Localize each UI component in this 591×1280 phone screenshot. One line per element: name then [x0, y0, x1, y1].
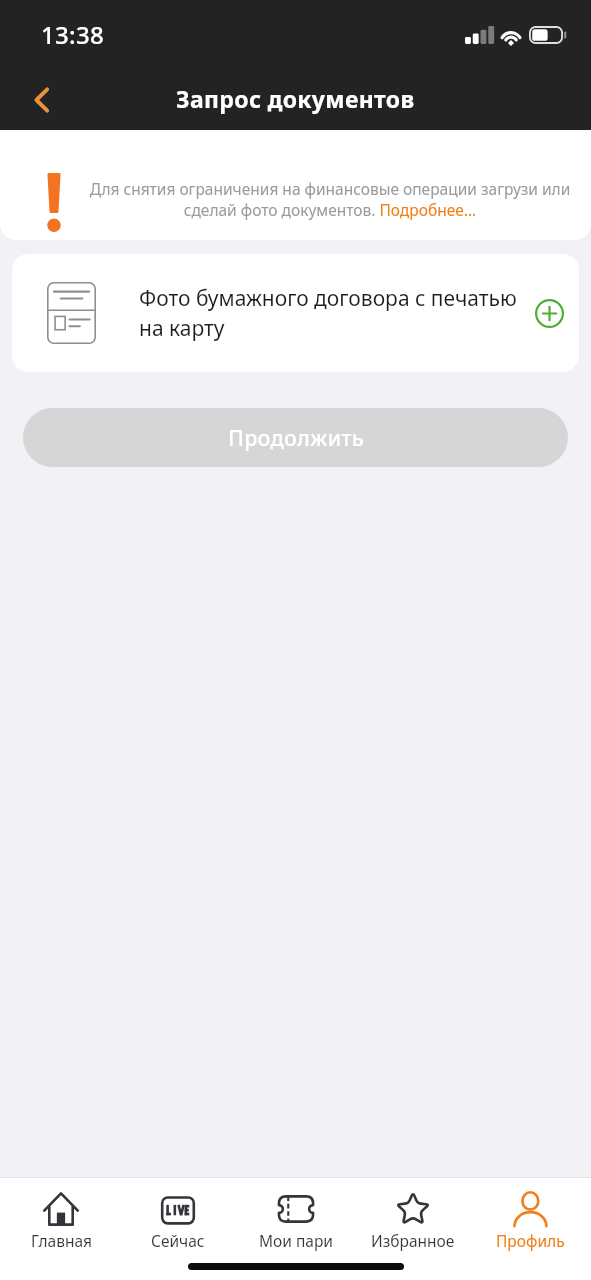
staticText: Профиль [496, 1230, 565, 1251]
button[interactable]: Сейчас [122, 1191, 234, 1251]
button[interactable]: Add document [531, 295, 567, 331]
button[interactable]: Избранное [357, 1191, 469, 1251]
staticText: Сейчас [151, 1230, 205, 1251]
staticText: Продолжить [228, 423, 364, 452]
button[interactable]: Профиль [474, 1191, 586, 1251]
staticText: Мои пари [259, 1230, 333, 1251]
staticText: Избранное [371, 1230, 455, 1251]
button[interactable]: Back [8, 73, 72, 123]
button[interactable]: Продолжить [23, 408, 568, 467]
staticText: Запрос документов [176, 83, 415, 114]
staticText: Для снятия ограничения на финансовые опе… [88, 178, 572, 220]
button[interactable]: Главная [5, 1191, 117, 1251]
staticText: 13:38 [41, 18, 104, 51]
button[interactable]: Фото бумажного договора с печатью на кар… [12, 254, 579, 372]
staticText: Фото бумажного договора с печатью на кар… [139, 284, 523, 342]
staticText: Главная [31, 1230, 92, 1251]
button[interactable]: Мои пари [240, 1191, 352, 1251]
